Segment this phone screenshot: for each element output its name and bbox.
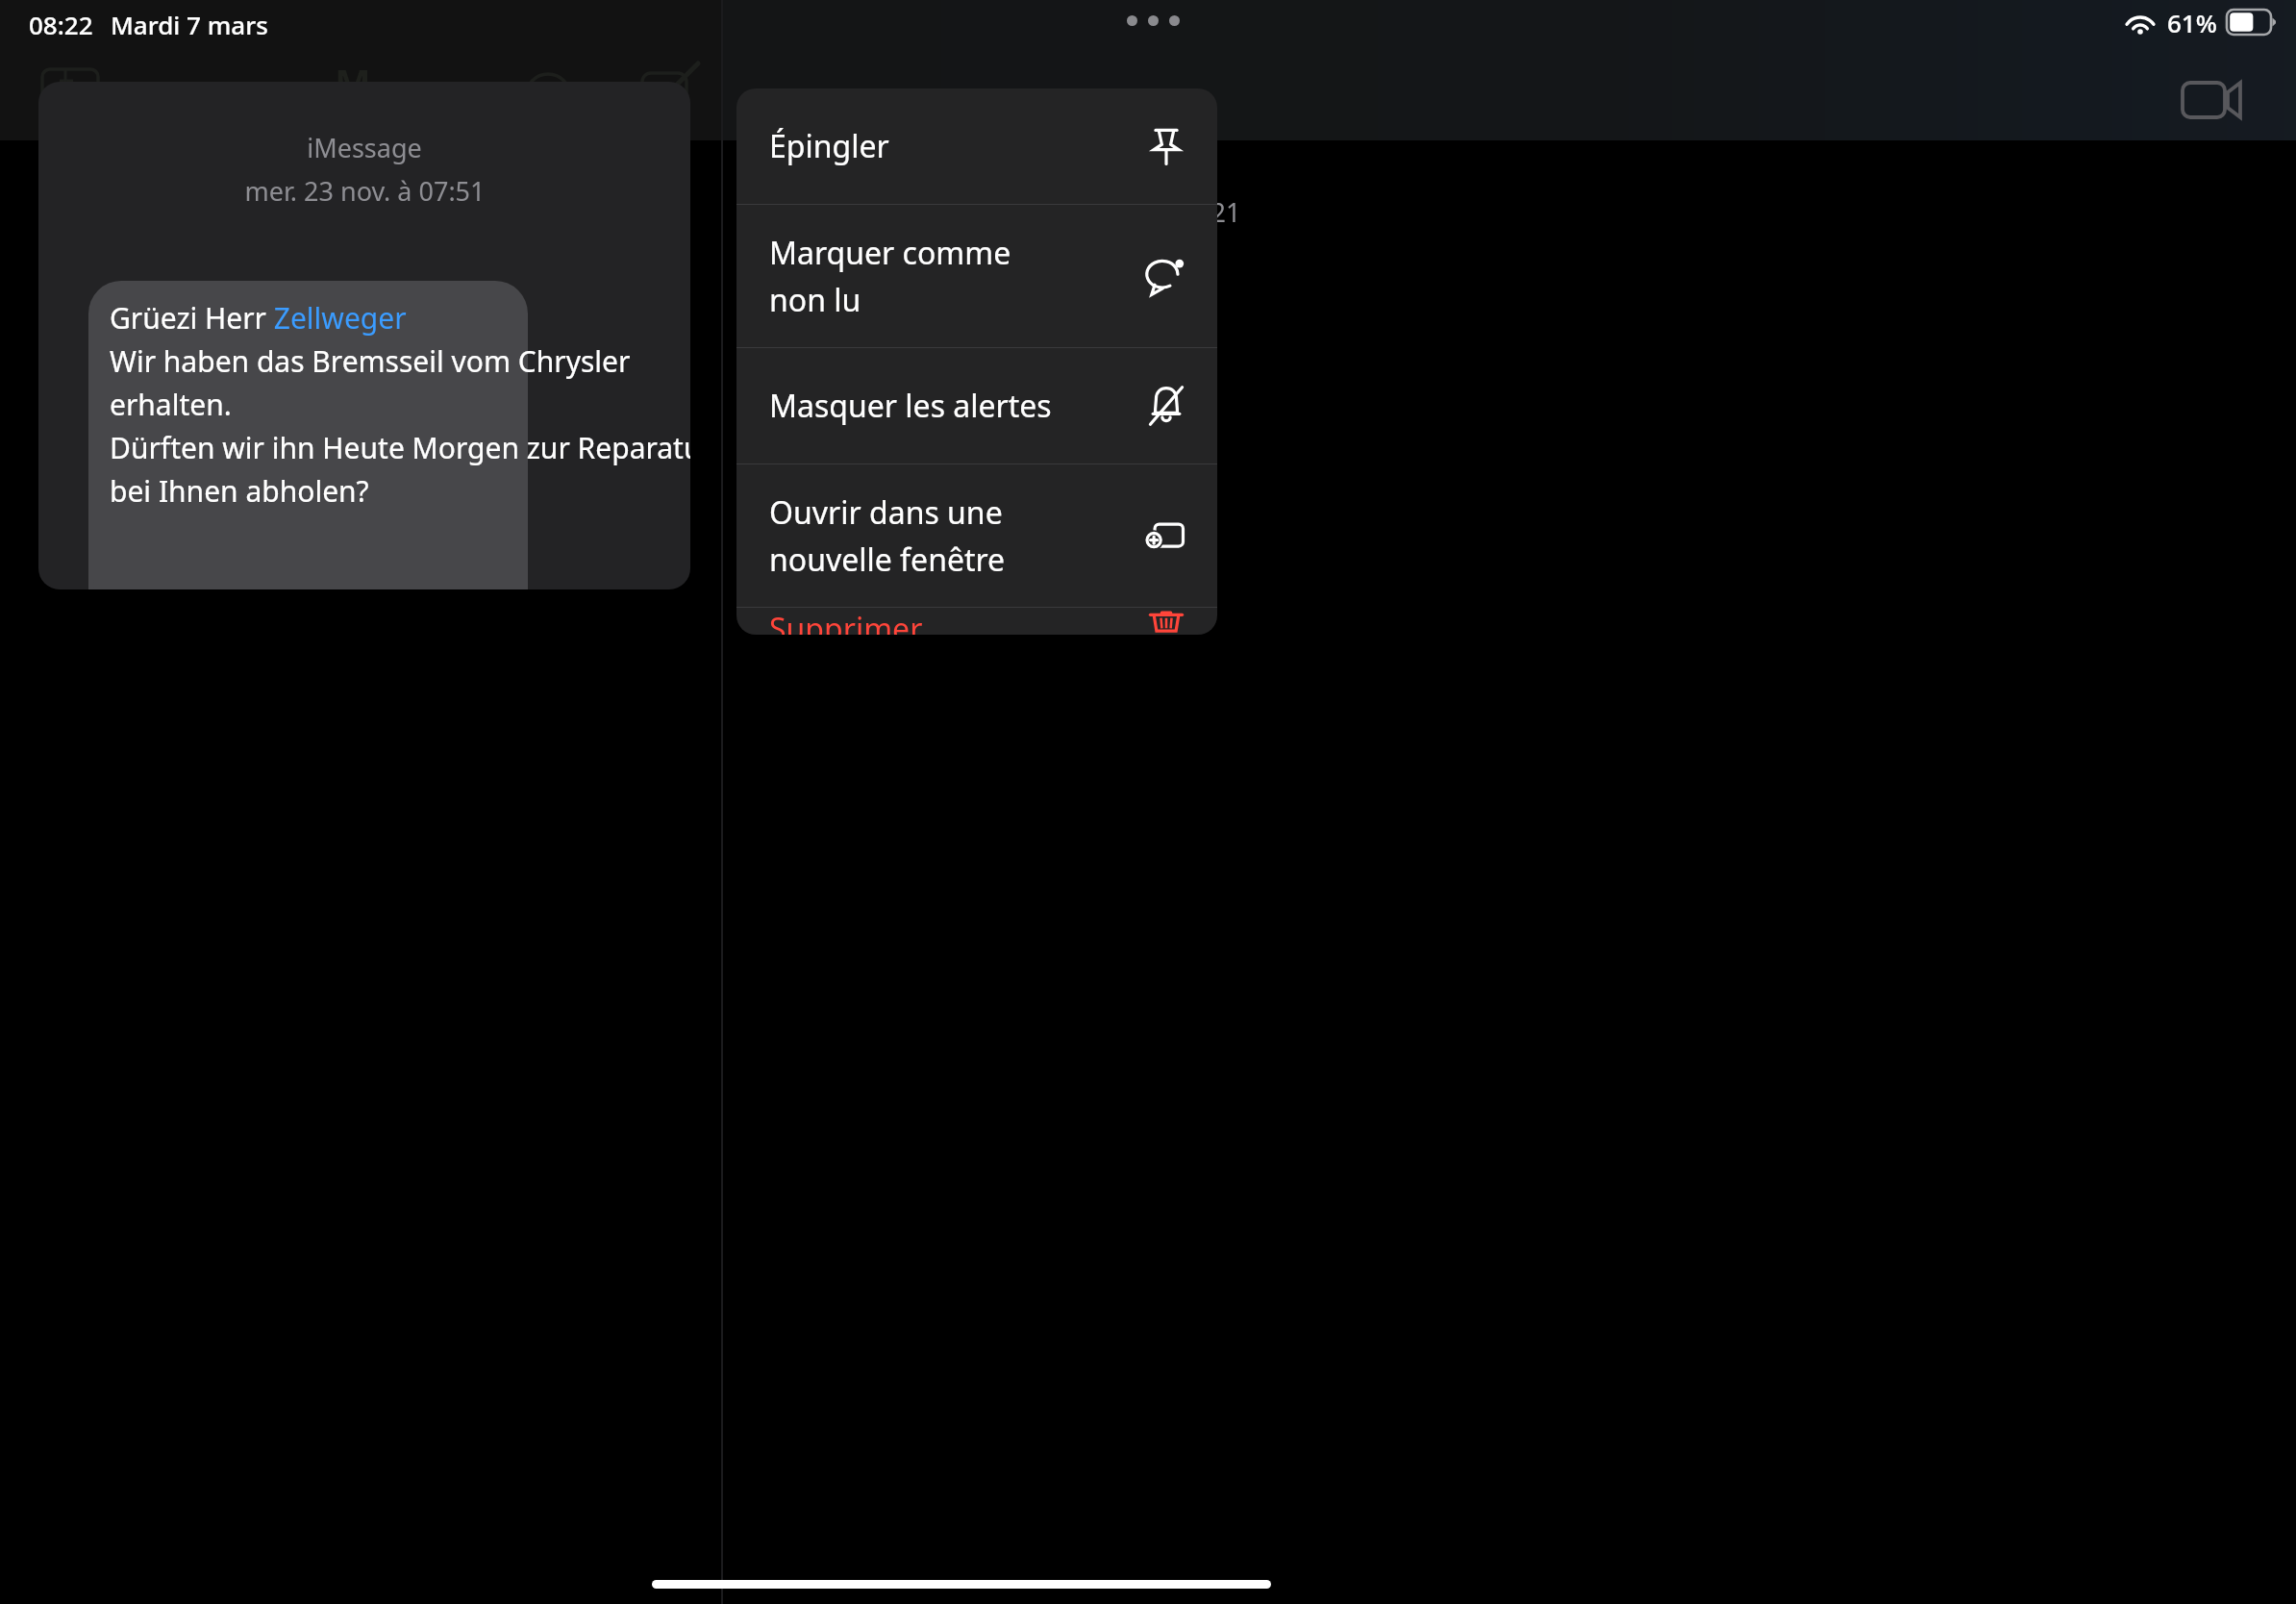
button[interactable]: Masquer les alertes [736,348,1217,464]
button[interactable]: Ouvrir dans une nouvelle fenêtre [736,464,1217,607]
staticText: 08:22 [29,8,93,41]
staticText: iMessage [307,130,422,165]
staticText: Épingler [769,125,1144,167]
button[interactable]: Marquer comme non lu [736,205,1217,347]
staticText: Grüezi Herr Zellweger Wir haben das Brem… [110,298,690,511]
staticText: M [335,56,371,108]
staticText: 61% [2167,6,2217,38]
staticText: Marquer comme non lu [769,232,1144,320]
staticText: Mardi 7 mars [111,8,268,41]
button[interactable]: Supprimer [736,608,1217,635]
staticText: Ouvrir dans une nouvelle fenêtre [769,491,1144,580]
button[interactable]: Épingler [736,88,1217,204]
staticText: lun. 27 févr. à 01:21 [1008,194,1241,230]
staticText: Masquer les alertes [769,385,1144,427]
button[interactable]: FaceTime video call [2175,67,2244,137]
button[interactable]: iMessage [38,82,690,589]
staticText: Supprimer [769,608,1144,635]
staticText: mer. 23 nov. à 07:51 [244,173,486,209]
